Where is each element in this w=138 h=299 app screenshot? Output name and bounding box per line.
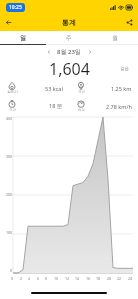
- staticText: 거리: [78, 90, 85, 94]
- button[interactable]: 시간: [0, 97, 69, 115]
- staticText: 400: [3, 116, 12, 121]
- staticText: 0: [3, 268, 12, 273]
- staticText: 2: [20, 276, 23, 281]
- staticText: 칼로리: [7, 90, 18, 94]
- staticText: 100: [3, 230, 12, 235]
- button[interactable]: 주: [46, 31, 92, 44]
- staticText: 10:25: [9, 4, 22, 11]
- staticText: 1.25 km: [111, 85, 132, 92]
- staticText: 53 kcal: [45, 85, 63, 92]
- button[interactable]: Next day: [84, 46, 95, 57]
- staticText: 16: [86, 276, 91, 281]
- button[interactable]: Previous day: [43, 46, 54, 57]
- button[interactable]: Back: [0, 14, 17, 31]
- staticText: 8: [45, 276, 48, 281]
- staticText: 6: [37, 276, 40, 281]
- staticText: 300: [3, 154, 12, 159]
- button[interactable]: 속도: [69, 97, 138, 115]
- staticText: 12: [65, 276, 70, 281]
- staticText: 20: [107, 276, 112, 281]
- button[interactable]: 월: [92, 31, 138, 44]
- staticText: 주: [66, 34, 72, 42]
- staticText: 18: [96, 276, 101, 281]
- staticText: 월: [112, 34, 118, 42]
- staticText: 속도: [78, 108, 85, 112]
- staticText: 1,604: [49, 58, 90, 79]
- staticText: 2.78 km/h: [106, 103, 132, 110]
- staticText: 통계: [62, 18, 76, 27]
- staticText: 일: [20, 34, 26, 42]
- button[interactable]: 거리: [69, 79, 138, 97]
- staticText: 시간: [9, 108, 16, 112]
- staticText: 14: [75, 276, 80, 281]
- staticText: 22: [117, 276, 122, 281]
- button[interactable]: 칼로리: [0, 79, 69, 97]
- button[interactable]: 일: [0, 31, 46, 44]
- staticText: 8월 23일: [57, 48, 81, 56]
- staticText: 4: [28, 276, 31, 281]
- staticText: 24: [128, 276, 133, 281]
- staticText: 18 분: [49, 102, 63, 110]
- staticText: 걸음: [120, 66, 129, 72]
- staticText: 10: [54, 276, 59, 281]
- staticText: 0: [11, 276, 14, 281]
- staticText: 200: [3, 192, 12, 197]
- button[interactable]: Share: [121, 14, 138, 31]
